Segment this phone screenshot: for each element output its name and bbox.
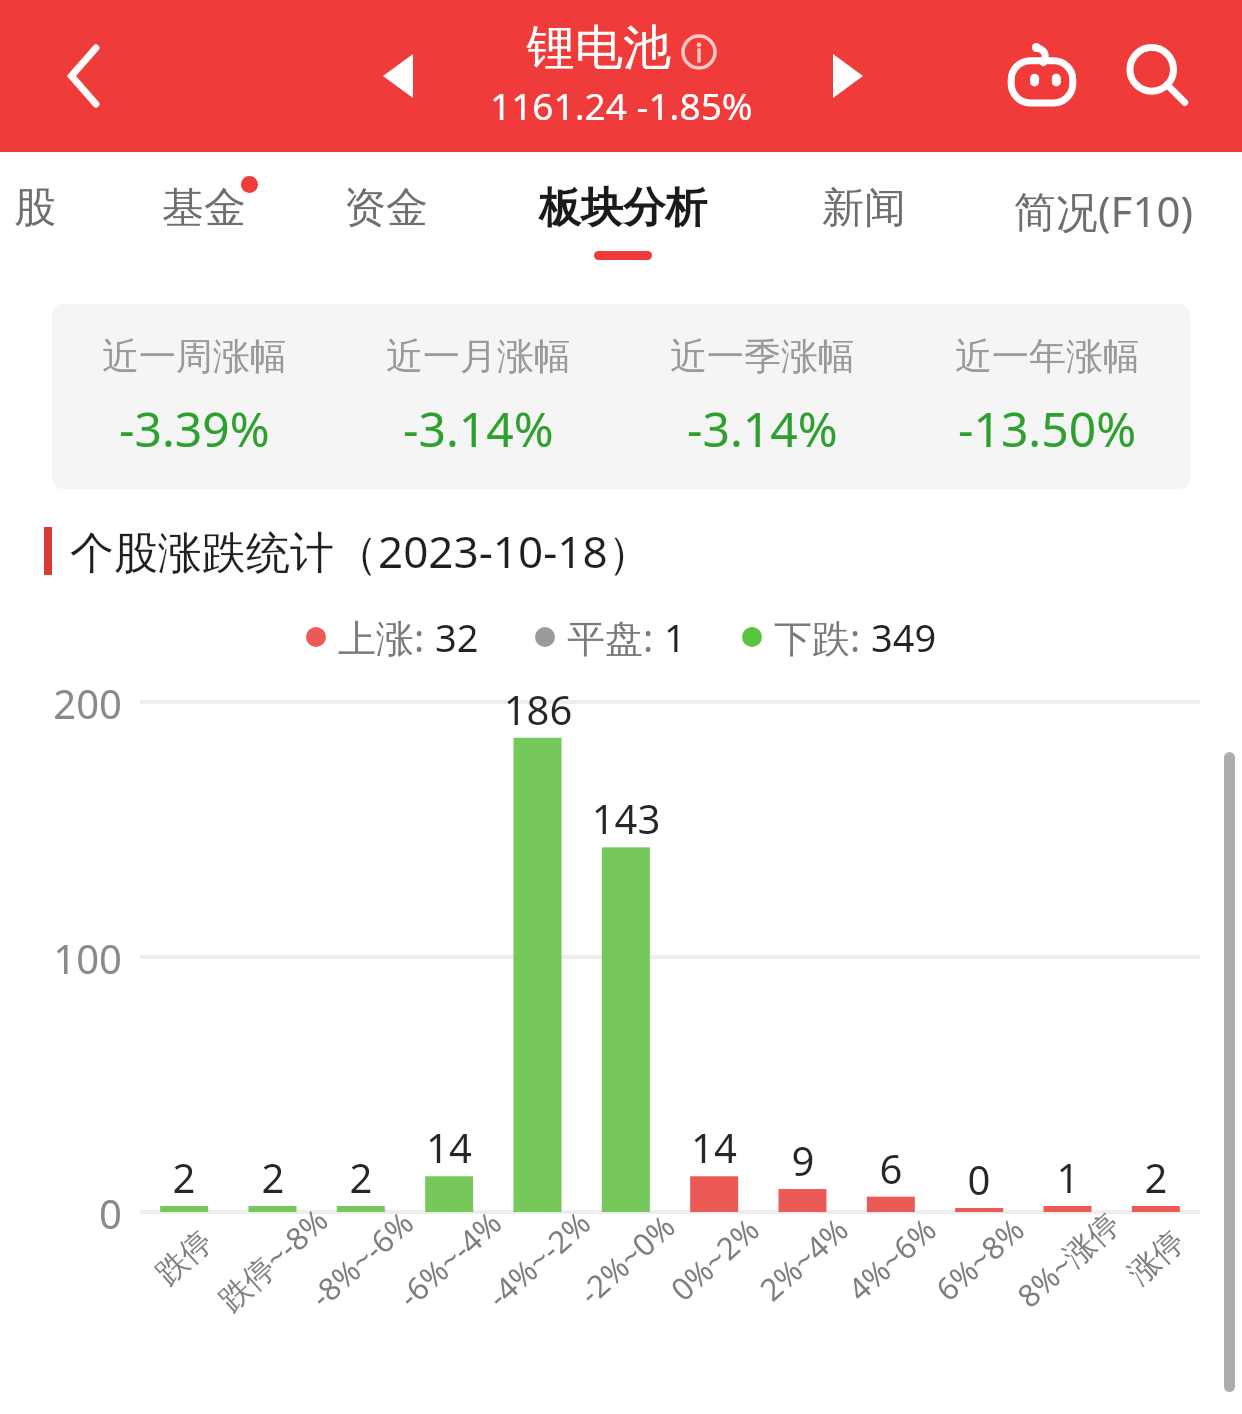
staticText: 6: [831, 1141, 951, 1195]
staticText: 新闻: [822, 182, 906, 235]
staticText: -3.39%: [119, 396, 270, 461]
staticText: 跌停~-8%: [209, 1199, 337, 1319]
staticText: 200: [22, 676, 122, 730]
staticText: 4%~6%: [838, 1208, 944, 1310]
staticText: 2: [1096, 1150, 1216, 1204]
staticText: 2: [124, 1150, 244, 1204]
button[interactable]: Search: [1107, 26, 1207, 126]
staticText: 100: [22, 931, 122, 985]
button[interactable]: Back: [40, 31, 130, 121]
staticText: 1161.24 -1.85%: [490, 80, 753, 130]
staticText: 个股涨跌统计（2023-10-18）: [70, 521, 652, 581]
staticText: 32: [435, 611, 479, 663]
button[interactable]: 锂电池: [490, 18, 753, 130]
button[interactable]: 下跌:: [742, 611, 937, 663]
staticText: 8%~涨停: [1008, 1202, 1128, 1316]
staticText: -3.14%: [687, 396, 838, 461]
staticText: 143: [566, 791, 686, 845]
staticText: 14: [389, 1120, 509, 1174]
staticText: 349: [871, 611, 937, 663]
button[interactable]: 近一季涨幅: [620, 304, 905, 489]
staticText: 简况(F10): [1014, 182, 1194, 239]
button[interactable]: 简况(F10): [1000, 152, 1208, 282]
staticText: -2%~0%: [570, 1205, 683, 1313]
staticText: -13.50%: [958, 396, 1137, 461]
staticText: 0%~2%: [661, 1208, 767, 1310]
staticText: 2: [301, 1150, 421, 1204]
staticText: 下跌:: [774, 611, 871, 663]
staticText: 0: [919, 1152, 1039, 1206]
staticText: 涨停: [1120, 1222, 1192, 1293]
staticText: 上涨:: [338, 611, 435, 663]
button[interactable]: Previous sector: [350, 28, 446, 124]
staticText: 平盘:: [567, 611, 664, 663]
staticText: 近一周涨幅: [102, 333, 287, 380]
staticText: 1: [664, 611, 686, 663]
button[interactable]: 个股涨跌统计（2023-10-18）: [44, 521, 1242, 581]
staticText: 9: [743, 1133, 863, 1187]
button[interactable]: 基金: [148, 152, 260, 282]
staticText: 2%~4%: [750, 1208, 856, 1310]
button[interactable]: 近一年涨幅: [905, 304, 1190, 489]
staticText: 板块分析: [539, 182, 707, 235]
staticText: 6%~8%: [926, 1208, 1032, 1310]
button[interactable]: 资金: [330, 152, 442, 282]
button[interactable]: AI assistant: [992, 26, 1092, 126]
button[interactable]: 新闻: [808, 152, 920, 282]
button[interactable]: 近一周涨幅: [52, 304, 336, 489]
staticText: -8%~-6%: [301, 1202, 422, 1316]
staticText: 14: [654, 1120, 774, 1174]
staticText: -6%~-4%: [389, 1202, 510, 1316]
button[interactable]: 上涨:: [306, 611, 479, 663]
staticText: 股: [14, 182, 56, 235]
staticText: 基金: [162, 182, 246, 235]
staticText: 1: [1008, 1150, 1128, 1204]
button[interactable]: 股: [0, 152, 70, 282]
button[interactable]: 近一月涨幅: [336, 304, 620, 489]
staticText: 资金: [344, 182, 428, 235]
staticText: 近一季涨幅: [670, 333, 855, 380]
button[interactable]: 板块分析: [525, 152, 721, 282]
staticText: 近一月涨幅: [386, 333, 571, 380]
staticText: -4%~-2%: [478, 1202, 599, 1316]
button[interactable]: 平盘:: [535, 611, 686, 663]
button[interactable]: Next sector: [800, 28, 896, 124]
staticText: 近一年涨幅: [955, 333, 1140, 380]
staticText: 跌停: [148, 1222, 220, 1293]
staticText: 186: [478, 682, 598, 736]
staticText: 2: [213, 1150, 333, 1204]
staticText: 锂电池: [527, 18, 671, 78]
staticText: 0: [22, 1186, 122, 1240]
staticText: -3.14%: [403, 396, 554, 461]
